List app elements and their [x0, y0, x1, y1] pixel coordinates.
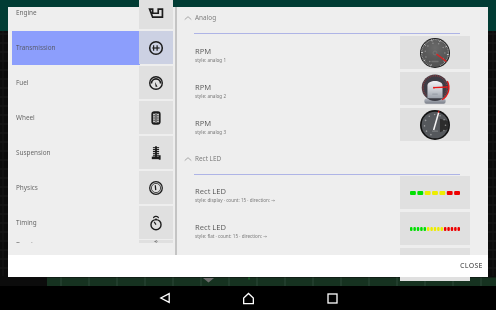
button[interactable]: Rect LED	[177, 212, 488, 245]
button[interactable]: CLOSE	[455, 257, 488, 275]
button[interactable]: RPM	[177, 72, 488, 105]
button[interactable]: Fuel	[8, 65, 175, 100]
button[interactable]: Boost	[8, 240, 175, 243]
button[interactable]: Back	[150, 286, 180, 310]
button[interactable]: Timing	[8, 205, 175, 240]
staticText: style: display · count: 15 · direction: …	[195, 197, 276, 203]
button[interactable]: Engine	[8, 0, 175, 30]
staticText: Rect LED	[195, 186, 227, 196]
staticText: style: analog 3	[195, 129, 227, 135]
button[interactable]: Recent apps	[317, 286, 347, 310]
button[interactable]: Home	[233, 286, 263, 310]
button[interactable]: Wheel	[8, 100, 175, 135]
staticText: Rect LED	[195, 154, 222, 163]
button[interactable]: Physics	[8, 170, 175, 205]
staticText: Physics	[16, 183, 38, 192]
button[interactable]: Suspension	[8, 135, 175, 170]
staticText: Boost	[16, 240, 34, 243]
staticText: Analog	[195, 13, 217, 22]
button[interactable]: Analog	[177, 11, 488, 24]
button[interactable]: Rect LED	[177, 152, 488, 165]
staticText: Rect LED	[195, 222, 227, 232]
staticText: style: analog 1	[195, 57, 227, 63]
staticText: Engine	[16, 8, 37, 17]
staticText: RPM	[195, 118, 212, 128]
button[interactable]: Rect LED	[177, 248, 488, 281]
staticText: style: flat · count: 15 · direction: →	[195, 233, 267, 239]
button[interactable]: Transmission	[8, 30, 175, 65]
button[interactable]: RPM	[177, 108, 488, 141]
staticText: RPM	[195, 82, 212, 92]
button[interactable]: RPM	[177, 36, 488, 69]
staticText: Suspension	[16, 148, 51, 157]
staticText: Transmission	[16, 43, 56, 52]
staticText: style: analog 2	[195, 93, 227, 99]
staticText: RPM	[195, 46, 212, 56]
staticText: Fuel	[16, 78, 29, 87]
staticText: Timing	[16, 218, 37, 227]
button[interactable]: Rect LED	[177, 176, 488, 209]
staticText: Wheel	[16, 113, 35, 122]
staticText: CLOSE	[460, 261, 483, 271]
